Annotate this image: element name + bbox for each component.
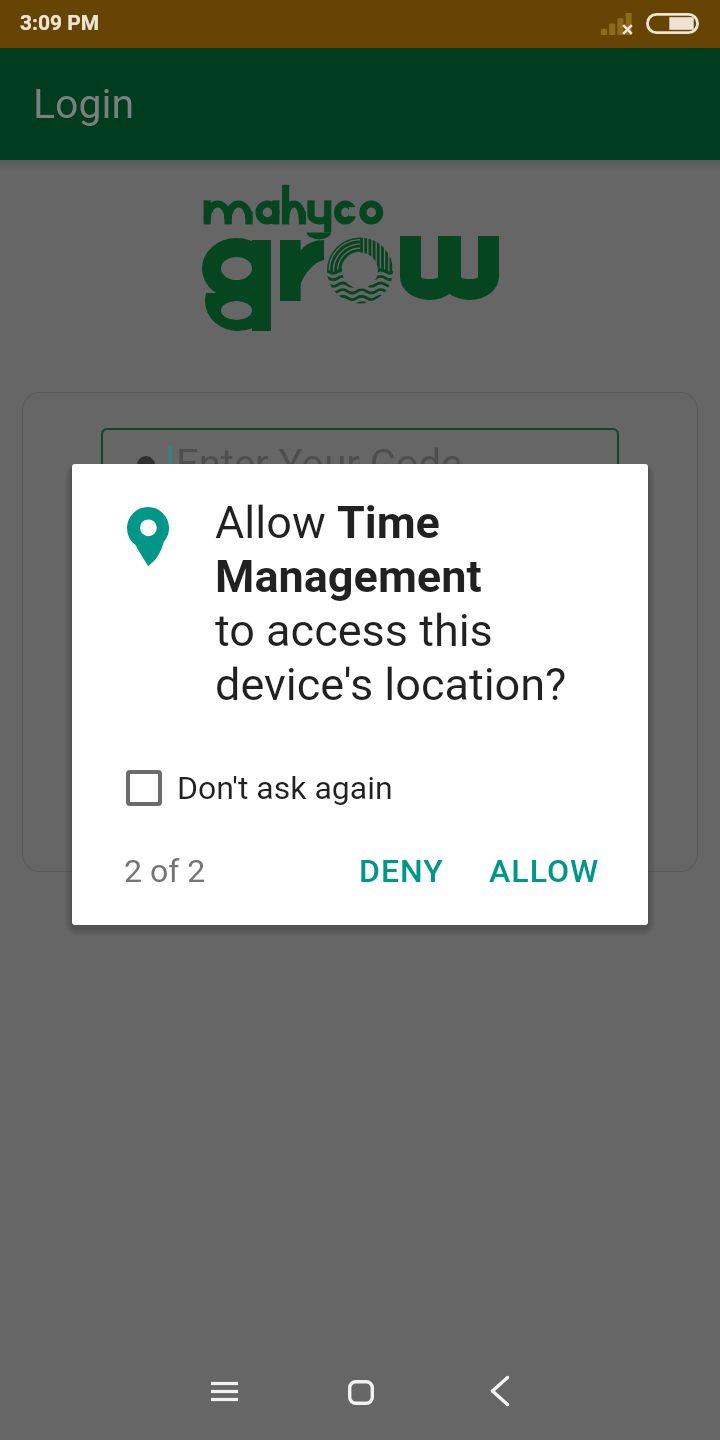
button[interactable]: Login bbox=[0, 48, 720, 160]
staticText: Don't ask again bbox=[177, 769, 393, 807]
button[interactable]: DENY bbox=[341, 842, 462, 900]
button[interactable]: ALLOW bbox=[471, 842, 618, 900]
staticText: ALLOW bbox=[489, 852, 600, 890]
staticText: Enter Your Code bbox=[176, 441, 463, 488]
button[interactable]: Recents bbox=[188, 1355, 260, 1427]
button[interactable]: Don't ask again bbox=[114, 757, 405, 819]
staticText: 2 of 2 bbox=[124, 852, 206, 890]
staticText: 3:09 PM bbox=[20, 11, 100, 36]
staticText: DENY bbox=[359, 852, 444, 890]
button[interactable]: Home bbox=[325, 1356, 397, 1428]
staticText: Allow Time Management to access this dev… bbox=[215, 496, 595, 711]
button[interactable]: Back bbox=[464, 1355, 536, 1427]
staticText: Login bbox=[33, 80, 135, 128]
